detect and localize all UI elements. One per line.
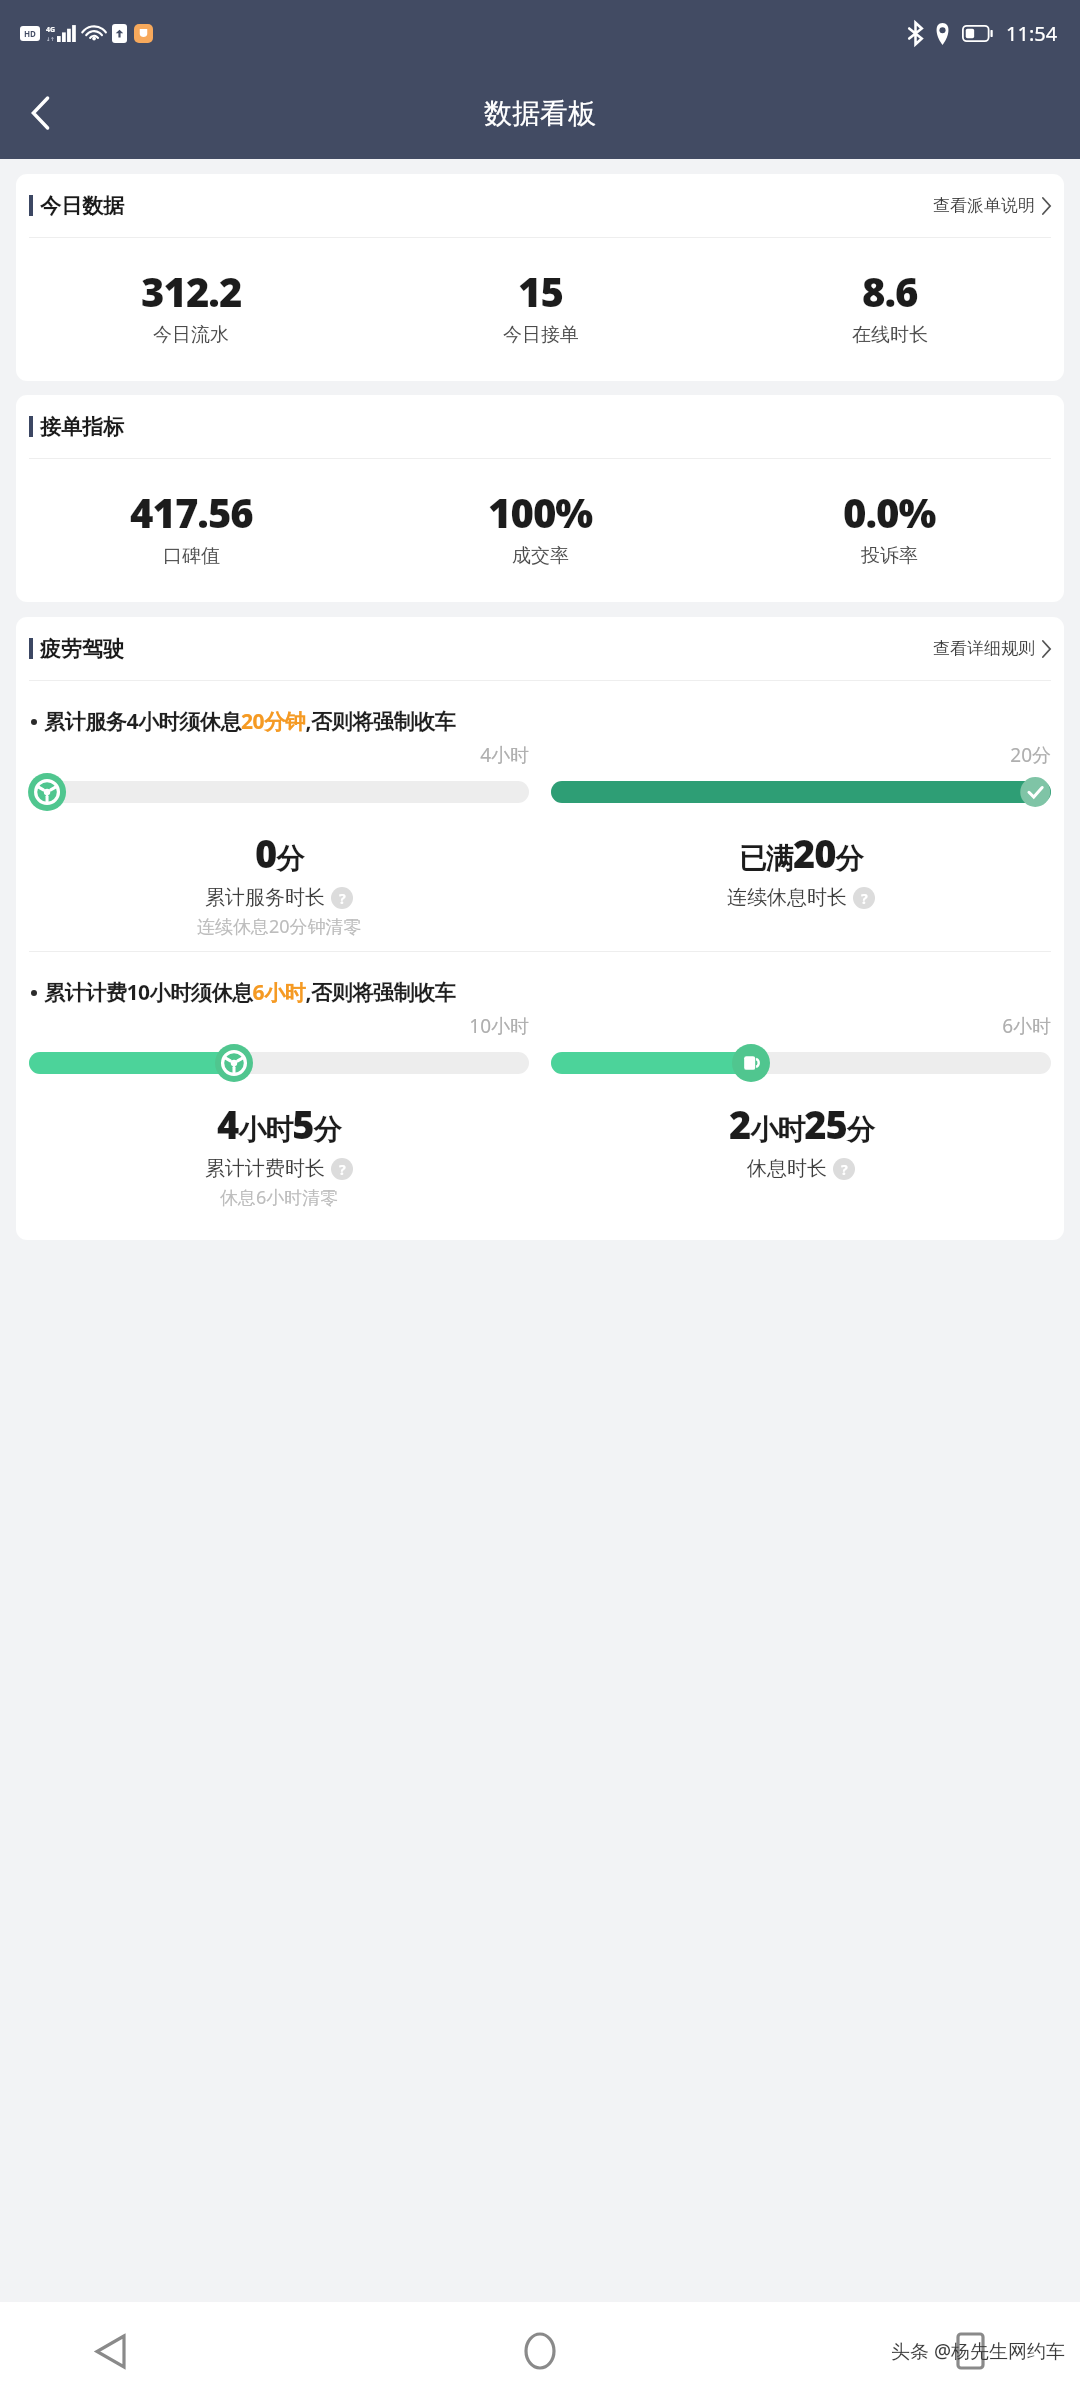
staticText: 312.2 (141, 264, 242, 318)
staticText: 休息时长 (747, 1156, 827, 1181)
staticText: 累计计费10小时须休息6小时,否则将强制收车 (44, 978, 456, 1007)
staticText: 417.56 (130, 485, 253, 539)
staticText: 查看派单说明 (933, 195, 1035, 216)
staticText: 4小时5分 (217, 1098, 341, 1150)
staticText: 连续休息时长 (727, 885, 847, 910)
staticText: 100% (488, 485, 593, 539)
staticText: 20分 (551, 742, 1051, 768)
staticText: 4G (46, 25, 56, 35)
button[interactable]: Back (78, 2319, 142, 2383)
staticText: 数据看板 (484, 96, 596, 131)
staticText: 今日流水 (153, 323, 229, 347)
staticText: 口碑值 (163, 544, 220, 568)
staticText: ? (339, 889, 346, 908)
button[interactable]: Help (853, 887, 875, 909)
staticText: 2小时25分 (729, 1098, 874, 1150)
staticText: 成交率 (512, 544, 569, 568)
staticText: 累计服务时长 (205, 885, 325, 910)
staticText: 6小时 (551, 1013, 1051, 1039)
staticText: HD (24, 28, 36, 39)
staticText: 今日数据 (40, 193, 124, 219)
staticText: 15 (518, 264, 563, 318)
staticText: 休息6小时清零 (220, 1185, 339, 1210)
button[interactable]: Help (833, 1158, 855, 1180)
staticText: 疲劳驾驶 (40, 636, 124, 662)
staticText: 头条 @杨先生网约车 (891, 2338, 1066, 2364)
staticText: 查看详细规则 (933, 638, 1035, 659)
button[interactable]: Home (508, 2319, 572, 2383)
staticText: 今日接单 (503, 323, 579, 347)
button[interactable]: Back (12, 85, 68, 141)
staticText: ? (339, 1160, 346, 1179)
staticText: ? (841, 1160, 848, 1179)
button[interactable]: 查看详细规则 (933, 638, 1051, 659)
staticText: 4小时 (29, 742, 529, 768)
staticText: 在线时长 (852, 323, 928, 347)
staticText: 累计计费时长 (205, 1156, 325, 1181)
staticText: 连续休息20分钟清零 (197, 914, 362, 939)
staticText: 11:54 (1006, 20, 1058, 47)
button[interactable]: Help (331, 887, 353, 909)
staticText: 接单指标 (40, 414, 124, 440)
staticText: 0.0% (843, 485, 936, 539)
staticText: 8.6 (862, 264, 918, 318)
button[interactable]: 查看派单说明 (933, 195, 1051, 216)
staticText: ↓↑ (46, 36, 55, 42)
button[interactable]: Help (331, 1158, 353, 1180)
staticText: 投诉率 (861, 544, 918, 568)
button[interactable]: Recents (938, 2319, 1002, 2383)
staticText: 10小时 (29, 1013, 529, 1039)
staticText: 0分 (255, 827, 304, 879)
staticText: 累计服务4小时须休息20分钟,否则将强制收车 (44, 707, 456, 736)
staticText: 已满20分 (739, 827, 863, 879)
staticText: ? (861, 889, 868, 908)
